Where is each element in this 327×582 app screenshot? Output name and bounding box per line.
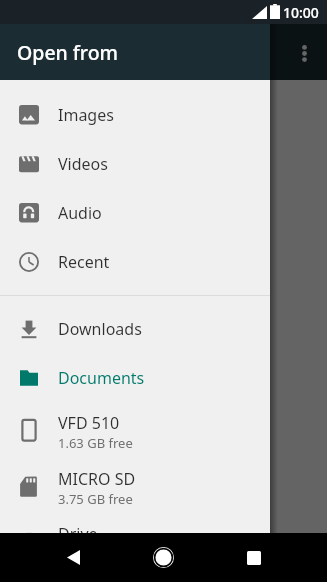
button[interactable]: Back [51,533,95,582]
staticText: Downloads [58,318,142,340]
button[interactable]: Images [0,90,270,139]
button[interactable]: More options [282,24,327,80]
button[interactable]: Downloads [0,304,270,353]
button[interactable]: Recent [0,237,270,286]
button[interactable]: MICRO SD [0,457,270,513]
button[interactable]: Recent apps [232,533,276,582]
button[interactable]: Home [141,533,185,582]
staticText: VFD 510 [58,412,120,434]
staticText: Audio [58,202,102,224]
staticText: MICRO SD [58,468,136,490]
staticText: 10:00 [283,3,319,22]
staticText: Recent [58,251,110,273]
staticText: 1.63 GB free [58,434,133,452]
staticText: 3.75 GB free [58,490,133,508]
button[interactable]: Audio [0,188,270,237]
staticText: Videos [58,153,108,175]
staticText: Documents [58,367,145,389]
button[interactable]: Documents [0,353,270,402]
button[interactable]: VFD 510 [0,402,270,457]
staticText: Images [58,104,114,126]
button[interactable]: Drive [0,513,270,562]
staticText: Drive [58,523,98,545]
button[interactable]: Videos [0,139,270,188]
staticText: Open from [17,39,119,66]
